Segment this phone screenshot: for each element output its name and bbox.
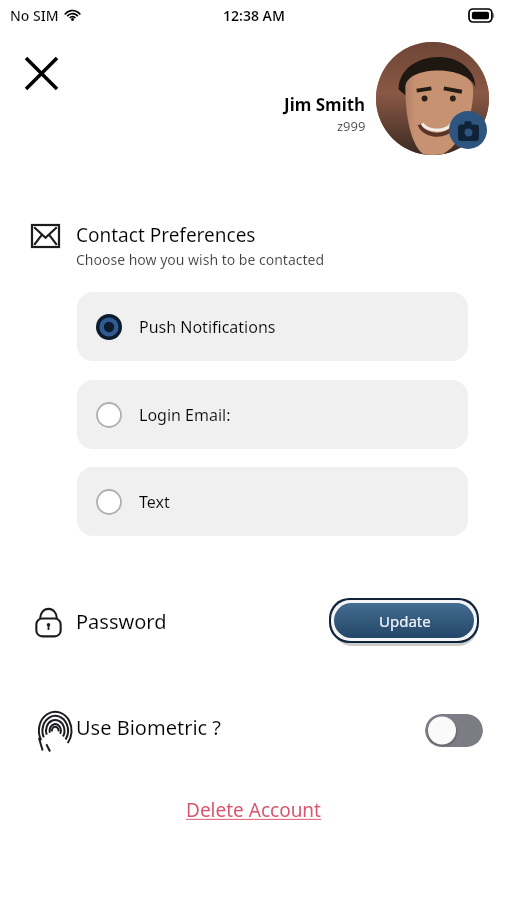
button[interactable]: Update (329, 598, 481, 646)
button[interactable]: Change photo (449, 111, 487, 149)
staticText: Text (139, 491, 170, 513)
staticText: Use Biometric ? (76, 714, 222, 741)
button[interactable]: Text (77, 467, 468, 536)
staticText: Push Notifications (139, 316, 276, 338)
button[interactable]: Change profile photo (376, 42, 489, 155)
staticText: No SIM (10, 6, 59, 25)
staticText: Contact Preferences (76, 222, 256, 248)
staticText: Jim Smith (284, 93, 366, 116)
button[interactable]: Use biometric toggle, off (425, 714, 483, 747)
staticText: 12:38 AM (223, 6, 285, 25)
staticText: Login Email: (139, 404, 231, 426)
button[interactable]: Push Notifications (77, 292, 468, 361)
staticText: Password (76, 608, 167, 635)
button[interactable]: Login Email: (77, 380, 468, 449)
button[interactable]: Close (16, 48, 66, 98)
staticText: Delete Account (186, 797, 321, 823)
staticText: Update (379, 611, 431, 631)
staticText: z999 (337, 117, 366, 135)
staticText: Choose how you wish to be contacted (76, 250, 325, 269)
button[interactable]: Delete Account (178, 793, 329, 827)
